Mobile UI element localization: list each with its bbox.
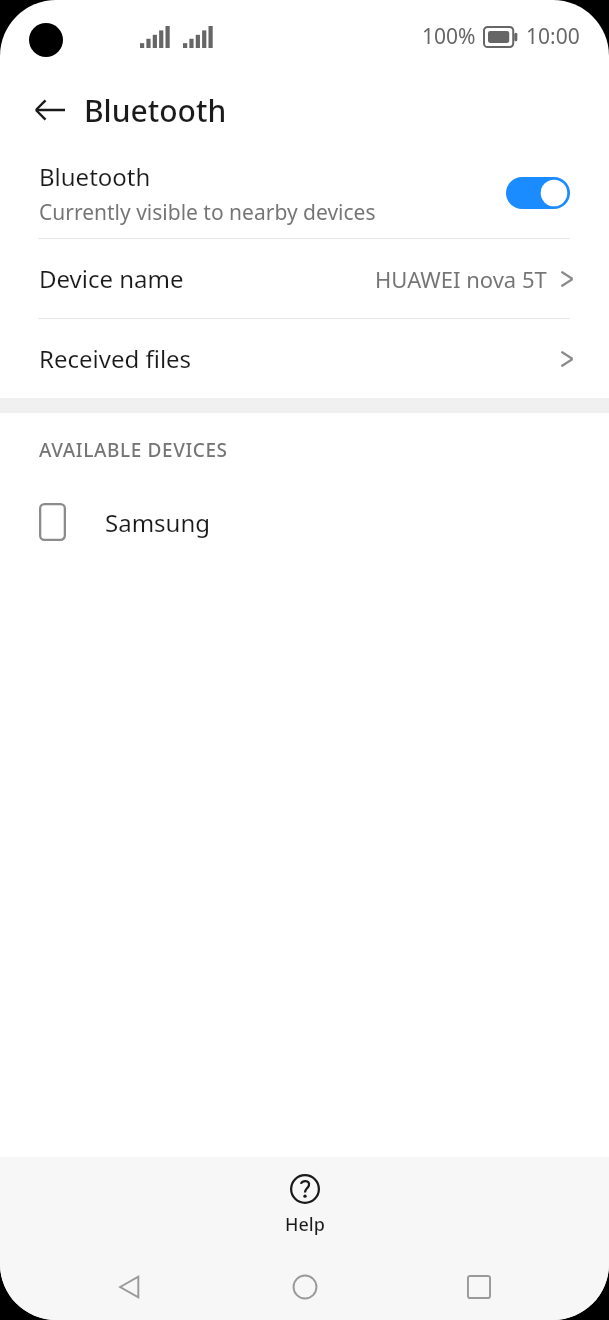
- button[interactable]: Help: [265, 1170, 345, 1241]
- button[interactable]: Bluetooth on: [506, 177, 570, 209]
- staticText: Bluetooth: [39, 160, 151, 193]
- staticText: Help: [285, 1212, 325, 1237]
- button[interactable]: Recents: [435, 1257, 523, 1317]
- staticText: 10:00: [526, 22, 580, 51]
- staticText: AVAILABLE DEVICES: [39, 437, 228, 463]
- staticText: HUAWEI nova 5T: [375, 264, 547, 294]
- staticText: Currently visible to nearby devices: [39, 198, 376, 227]
- button[interactable]: Back: [26, 86, 74, 134]
- staticText: Received files: [39, 342, 192, 375]
- button[interactable]: Samsung: [0, 487, 609, 557]
- button[interactable]: Device name: [0, 239, 609, 318]
- button[interactable]: Received files: [0, 319, 609, 398]
- button[interactable]: Back: [86, 1257, 174, 1317]
- staticText: Samsung: [105, 506, 210, 539]
- button[interactable]: Home: [261, 1257, 349, 1317]
- button[interactable]: Bluetooth: [0, 148, 609, 238]
- staticText: Bluetooth: [84, 90, 227, 131]
- staticText: 100%: [422, 22, 476, 51]
- staticText: Device name: [39, 262, 184, 295]
